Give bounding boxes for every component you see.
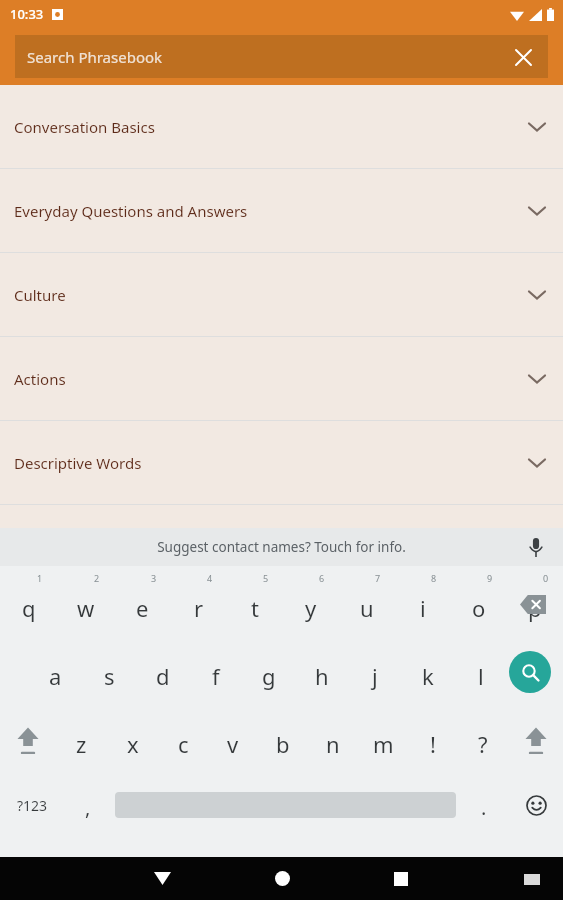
button[interactable]: s [82,638,136,706]
button[interactable]: ? [458,706,508,774]
button[interactable]: Descriptive Words [0,421,563,504]
button[interactable]: n [308,706,358,774]
staticText: k [422,661,434,691]
button[interactable]: , [64,774,112,836]
button[interactable]: Voice input [521,532,551,562]
staticText: f [212,661,220,691]
staticText: ? [478,729,488,759]
button[interactable]: 5 [227,570,283,638]
staticText: w [77,593,95,623]
staticText: l [478,661,484,691]
button[interactable]: Search Phrasebook [15,35,548,78]
staticText: b [276,729,290,759]
staticText: 4 [207,572,213,584]
button[interactable]: Culture [0,253,563,336]
staticText: Descriptive Words [14,453,142,473]
staticText: t [251,593,259,623]
staticText: p [528,593,542,623]
button[interactable]: 8 [395,570,451,638]
staticText: ?123 [17,796,48,815]
button[interactable]: Everyday Questions and Answers [0,169,563,252]
staticText: 1 [37,572,43,584]
button[interactable]: b [258,706,308,774]
staticText: Conversation Basics [14,117,155,137]
staticText: , [85,794,91,821]
staticText: x [127,729,139,759]
staticText: g [262,661,276,691]
staticText: 3 [151,572,157,584]
button[interactable]: z [56,706,107,774]
staticText: q [22,593,36,623]
staticText: 6 [319,572,325,584]
button[interactable]: c [158,706,208,774]
staticText: 0 [543,572,549,584]
staticText: 10:33 [10,5,44,23]
staticText: 2 [94,572,100,584]
button[interactable]: 7 [339,570,395,638]
staticText: Search Phrasebook [27,47,508,67]
button[interactable]: j [348,638,401,706]
button[interactable]: 6 [283,570,339,638]
staticText: Culture [14,285,66,305]
staticText: s [104,661,115,691]
staticText: c [178,729,189,759]
button[interactable]: d [136,638,189,706]
staticText: 9 [487,572,493,584]
button[interactable]: 9 [451,570,507,638]
button[interactable]: x [107,706,158,774]
staticText: h [315,661,329,691]
button[interactable]: ! [408,706,458,774]
button[interactable]: . [459,774,509,836]
button[interactable]: 4 [171,570,227,638]
button[interactable]: Search [509,651,551,693]
staticText: r [194,593,204,623]
staticText: 8 [431,572,437,584]
button[interactable]: Conversation Basics [0,85,563,168]
button[interactable]: Shift [508,706,563,774]
staticText: v [227,729,239,759]
staticText: o [472,593,486,623]
button[interactable]: Home [260,857,304,900]
button[interactable]: v [208,706,258,774]
button[interactable]: m [358,706,408,774]
button[interactable]: Recents [379,857,423,900]
button[interactable]: Backspace [511,582,555,626]
button[interactable]: ?123 [0,774,64,836]
button[interactable]: h [295,638,348,706]
staticText: z [76,729,87,759]
staticText: j [372,661,378,691]
button[interactable]: 2 [57,570,114,638]
staticText: m [373,729,394,759]
staticText: . [481,794,487,821]
button[interactable]: Emoji [509,774,563,836]
staticText: n [326,729,340,759]
button[interactable]: Back [140,857,184,900]
staticText: 7 [375,572,381,584]
button[interactable]: k [401,638,454,706]
staticText: a [49,661,62,691]
button[interactable]: Actions [0,337,563,420]
staticText: i [420,593,426,623]
button[interactable]: g [242,638,295,706]
button[interactable]: Switch keyboard [515,862,549,896]
staticText: Everyday Questions and Answers [14,201,248,221]
button[interactable]: f [189,638,242,706]
staticText: e [136,593,149,623]
staticText: ! [430,729,436,759]
staticText: d [156,661,170,691]
staticText: 5 [263,572,269,584]
button[interactable]: 1 [0,570,57,638]
button[interactable]: Suggest contact names? Touch for info. [157,538,406,556]
staticText: y [305,593,317,623]
button[interactable]: 0 [507,570,563,638]
staticText: Actions [14,369,66,389]
button[interactable]: a [28,638,82,706]
staticText: u [360,593,374,623]
button[interactable]: Clear search [508,42,538,72]
button[interactable]: 3 [114,570,171,638]
button[interactable]: l [454,638,507,706]
button[interactable]: Shift [0,706,56,774]
